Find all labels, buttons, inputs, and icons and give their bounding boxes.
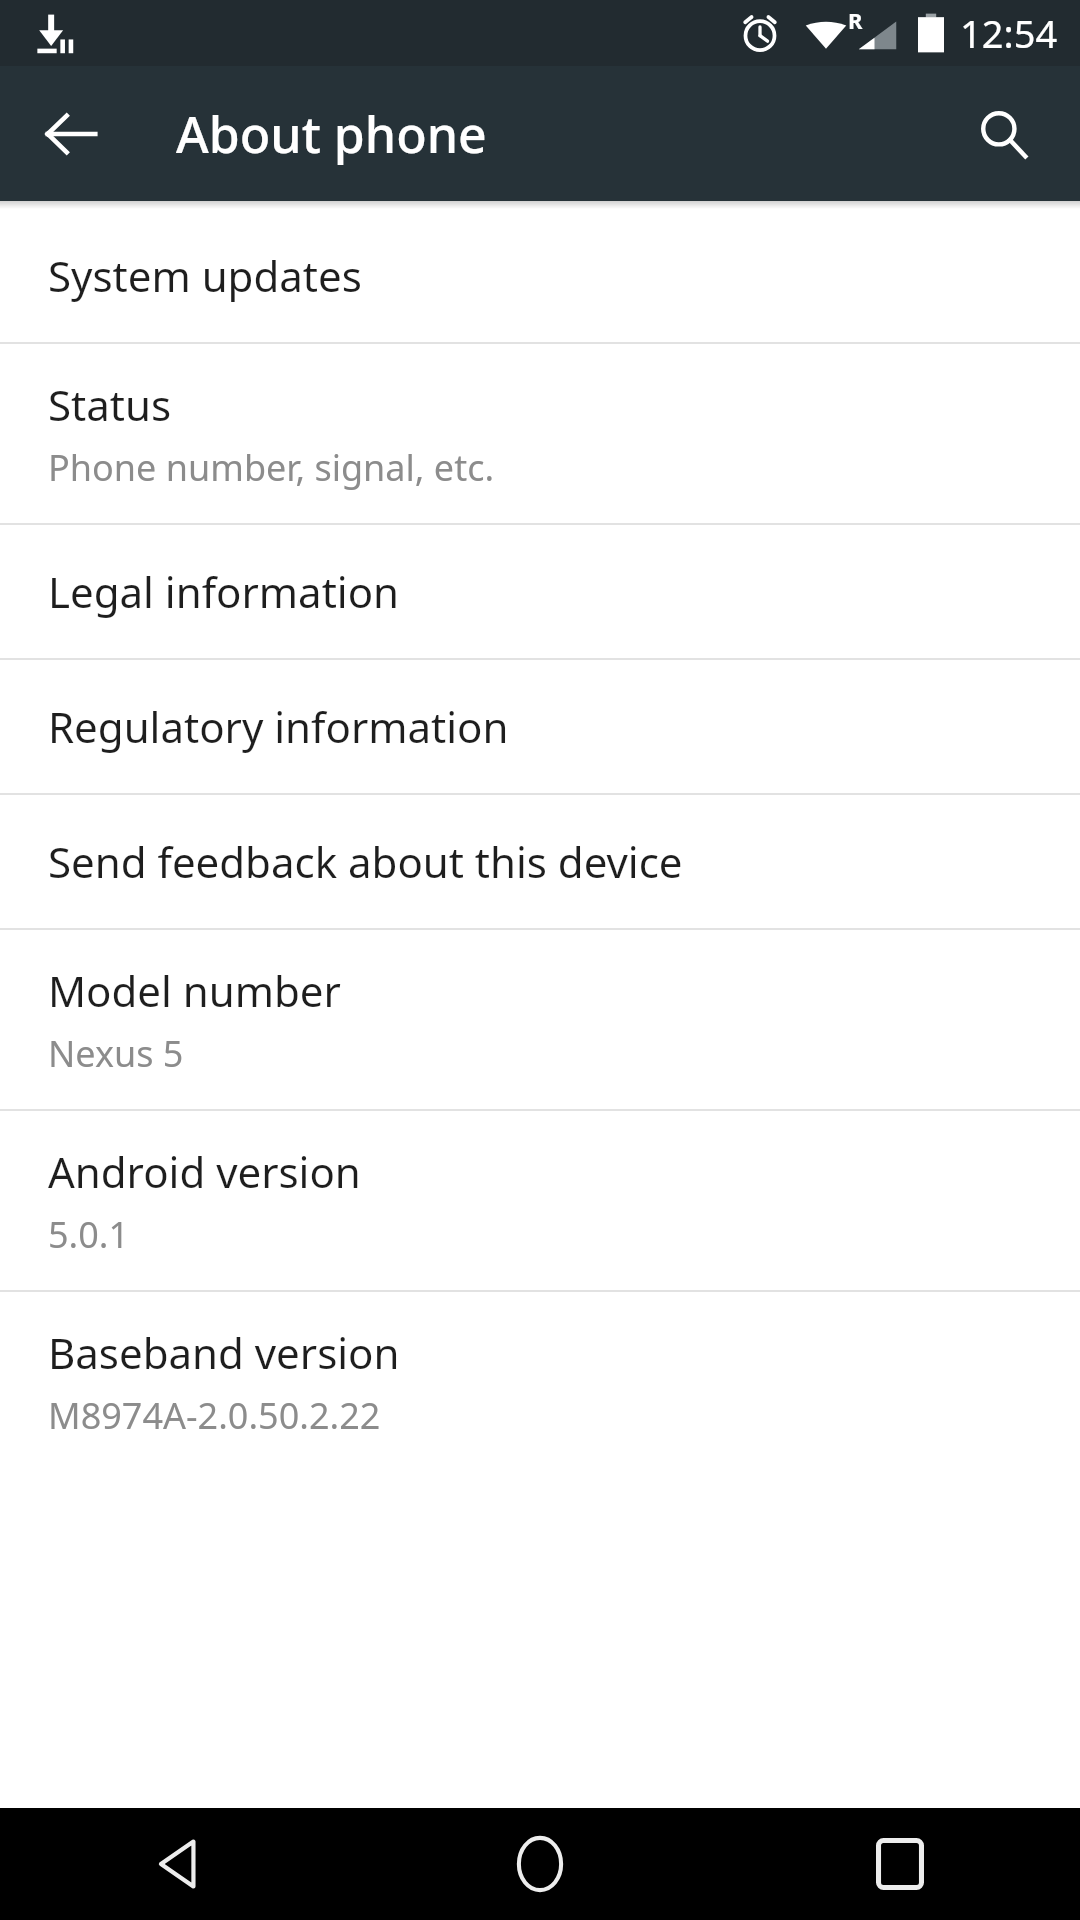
- button[interactable]: Back: [16, 79, 126, 189]
- staticText: Baseband version: [48, 1324, 400, 1381]
- staticText: Send feedback about this device: [48, 833, 683, 890]
- staticText: Status: [48, 376, 172, 433]
- button[interactable]: Regulatory information: [0, 660, 1080, 793]
- staticText: About phone: [176, 100, 487, 168]
- button[interactable]: Search: [948, 79, 1058, 189]
- staticText: Legal information: [48, 563, 400, 620]
- button[interactable]: Send feedback about this device: [0, 795, 1080, 928]
- staticText: M8974A-2.0.50.2.22: [48, 1391, 381, 1440]
- button[interactable]: Recent apps: [720, 1808, 1080, 1920]
- staticText: R: [848, 5, 863, 35]
- staticText: System updates: [48, 247, 362, 304]
- staticText: Regulatory information: [48, 698, 509, 755]
- button[interactable]: Baseband version: [0, 1292, 1080, 1471]
- button[interactable]: Home: [360, 1808, 720, 1920]
- button[interactable]: Status: [0, 344, 1080, 523]
- staticText: Phone number, signal, etc.: [48, 443, 495, 492]
- button[interactable]: System updates: [0, 209, 1080, 342]
- staticText: Model number: [48, 962, 341, 1019]
- staticText: 5.0.1: [48, 1210, 130, 1259]
- staticText: Nexus 5: [48, 1029, 184, 1078]
- button[interactable]: Model number: [0, 930, 1080, 1109]
- staticText: 12:54: [960, 7, 1058, 59]
- button[interactable]: Legal information: [0, 525, 1080, 658]
- button[interactable]: Android version: [0, 1111, 1080, 1290]
- staticText: Android version: [48, 1143, 361, 1200]
- button[interactable]: Back: [0, 1808, 360, 1920]
